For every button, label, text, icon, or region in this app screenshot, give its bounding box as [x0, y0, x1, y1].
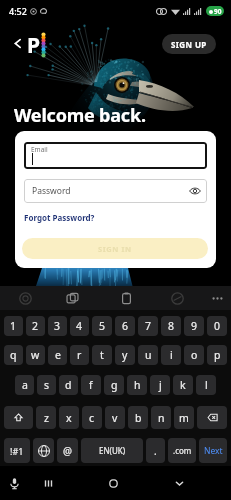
staticText: u: [145, 348, 152, 362]
button[interactable]: Home: [101, 471, 125, 495]
button[interactable]: k: [173, 375, 193, 395]
button[interactable]: y: [115, 345, 135, 365]
staticText: l: [205, 378, 208, 392]
staticText: P: [27, 31, 41, 60]
staticText: Forgot Password?: [24, 212, 95, 223]
button[interactable]: 2: [26, 316, 45, 336]
button[interactable]: Forgot Password?: [24, 212, 95, 223]
button[interactable]: Stickers: [61, 287, 83, 309]
button[interactable]: 5: [92, 316, 112, 336]
staticText: @: [63, 444, 72, 458]
button[interactable]: o: [184, 345, 204, 365]
staticText: o: [191, 348, 198, 362]
button[interactable]: m: [174, 406, 194, 429]
staticText: 4: [76, 319, 83, 333]
button[interactable]: Back: [8, 34, 26, 52]
staticText: 3: [54, 319, 61, 333]
button[interactable]: Keyboard settings: [14, 287, 36, 309]
staticText: SIGN UP: [171, 39, 207, 50]
button[interactable]: w: [26, 345, 45, 365]
staticText: q: [10, 348, 17, 362]
staticText: 6: [122, 319, 129, 333]
staticText: r: [77, 348, 82, 362]
button[interactable]: l: [196, 375, 216, 395]
staticText: 2: [32, 319, 39, 333]
staticText: EN(UK): [99, 445, 126, 456]
button[interactable]: 7: [138, 316, 158, 336]
button[interactable]: Email: [24, 142, 207, 169]
staticText: p: [214, 348, 221, 362]
button[interactable]: !#1: [4, 438, 30, 463]
staticText: m: [179, 411, 189, 425]
button[interactable]: Clipboard: [115, 287, 137, 309]
button[interactable]: q: [4, 345, 23, 365]
button[interactable]: e: [48, 345, 67, 365]
staticText: 8: [168, 319, 175, 333]
button[interactable]: EN(UK): [81, 438, 143, 463]
staticText: .: [154, 444, 157, 458]
button[interactable]: c: [82, 406, 102, 429]
button[interactable]: 4: [70, 316, 89, 336]
staticText: SIGN IN: [98, 244, 132, 254]
button[interactable]: SIGN UP: [162, 34, 216, 54]
staticText: c: [89, 411, 95, 425]
staticText: 9: [191, 319, 198, 333]
button[interactable]: z: [36, 406, 56, 429]
button[interactable]: n: [151, 406, 171, 429]
staticText: 90: [214, 7, 222, 16]
button[interactable]: Show password: [188, 184, 202, 198]
staticText: Next: [204, 445, 223, 457]
staticText: e: [55, 348, 61, 362]
staticText: f: [89, 378, 93, 392]
button[interactable]: .: [146, 438, 165, 463]
button[interactable]: 1: [4, 316, 23, 336]
button[interactable]: j: [150, 375, 170, 395]
staticText: 5: [99, 319, 106, 333]
staticText: z: [44, 411, 49, 425]
staticText: 7: [145, 319, 152, 333]
button[interactable]: f: [81, 375, 101, 395]
button[interactable]: s: [37, 375, 56, 395]
staticText: k: [180, 378, 186, 392]
button[interactable]: p: [207, 345, 227, 365]
button[interactable]: x: [59, 406, 79, 429]
button[interactable]: u: [138, 345, 158, 365]
button[interactable]: More options: [206, 287, 228, 309]
button[interactable]: 6: [115, 316, 135, 336]
button[interactable]: Shift: [4, 406, 33, 429]
button[interactable]: t: [92, 345, 112, 365]
staticText: Password: [32, 185, 71, 197]
button[interactable]: Translate: [166, 287, 188, 309]
button[interactable]: SIGN IN: [22, 238, 208, 259]
staticText: x: [66, 411, 72, 425]
staticText: v: [112, 411, 118, 425]
button[interactable]: r: [70, 345, 89, 365]
staticText: d: [65, 378, 72, 392]
button[interactable]: @: [57, 438, 78, 463]
button[interactable]: v: [105, 406, 125, 429]
button[interactable]: 0: [207, 316, 227, 336]
button[interactable]: b: [128, 406, 148, 429]
button[interactable]: Recent apps: [36, 471, 60, 495]
button[interactable]: Change language: [33, 438, 54, 463]
button[interactable]: Backspace: [197, 406, 227, 429]
staticText: t: [100, 348, 104, 362]
button[interactable]: Back: [167, 471, 191, 495]
button[interactable]: Voice input: [2, 471, 26, 495]
button[interactable]: 3: [48, 316, 67, 336]
button[interactable]: a: [15, 375, 34, 395]
button[interactable]: Password: [24, 179, 207, 203]
button[interactable]: d: [59, 375, 78, 395]
button[interactable]: h: [127, 375, 147, 395]
button[interactable]: Next: [199, 438, 227, 463]
button[interactable]: .com: [168, 438, 196, 463]
staticText: y: [122, 348, 128, 362]
button[interactable]: 9: [184, 316, 204, 336]
button[interactable]: i: [161, 345, 181, 365]
staticText: g: [111, 378, 118, 392]
button[interactable]: g: [104, 375, 124, 395]
staticText: .com: [173, 445, 192, 456]
staticText: !#1: [10, 445, 24, 457]
button[interactable]: 8: [161, 316, 181, 336]
staticText: i: [170, 348, 173, 362]
